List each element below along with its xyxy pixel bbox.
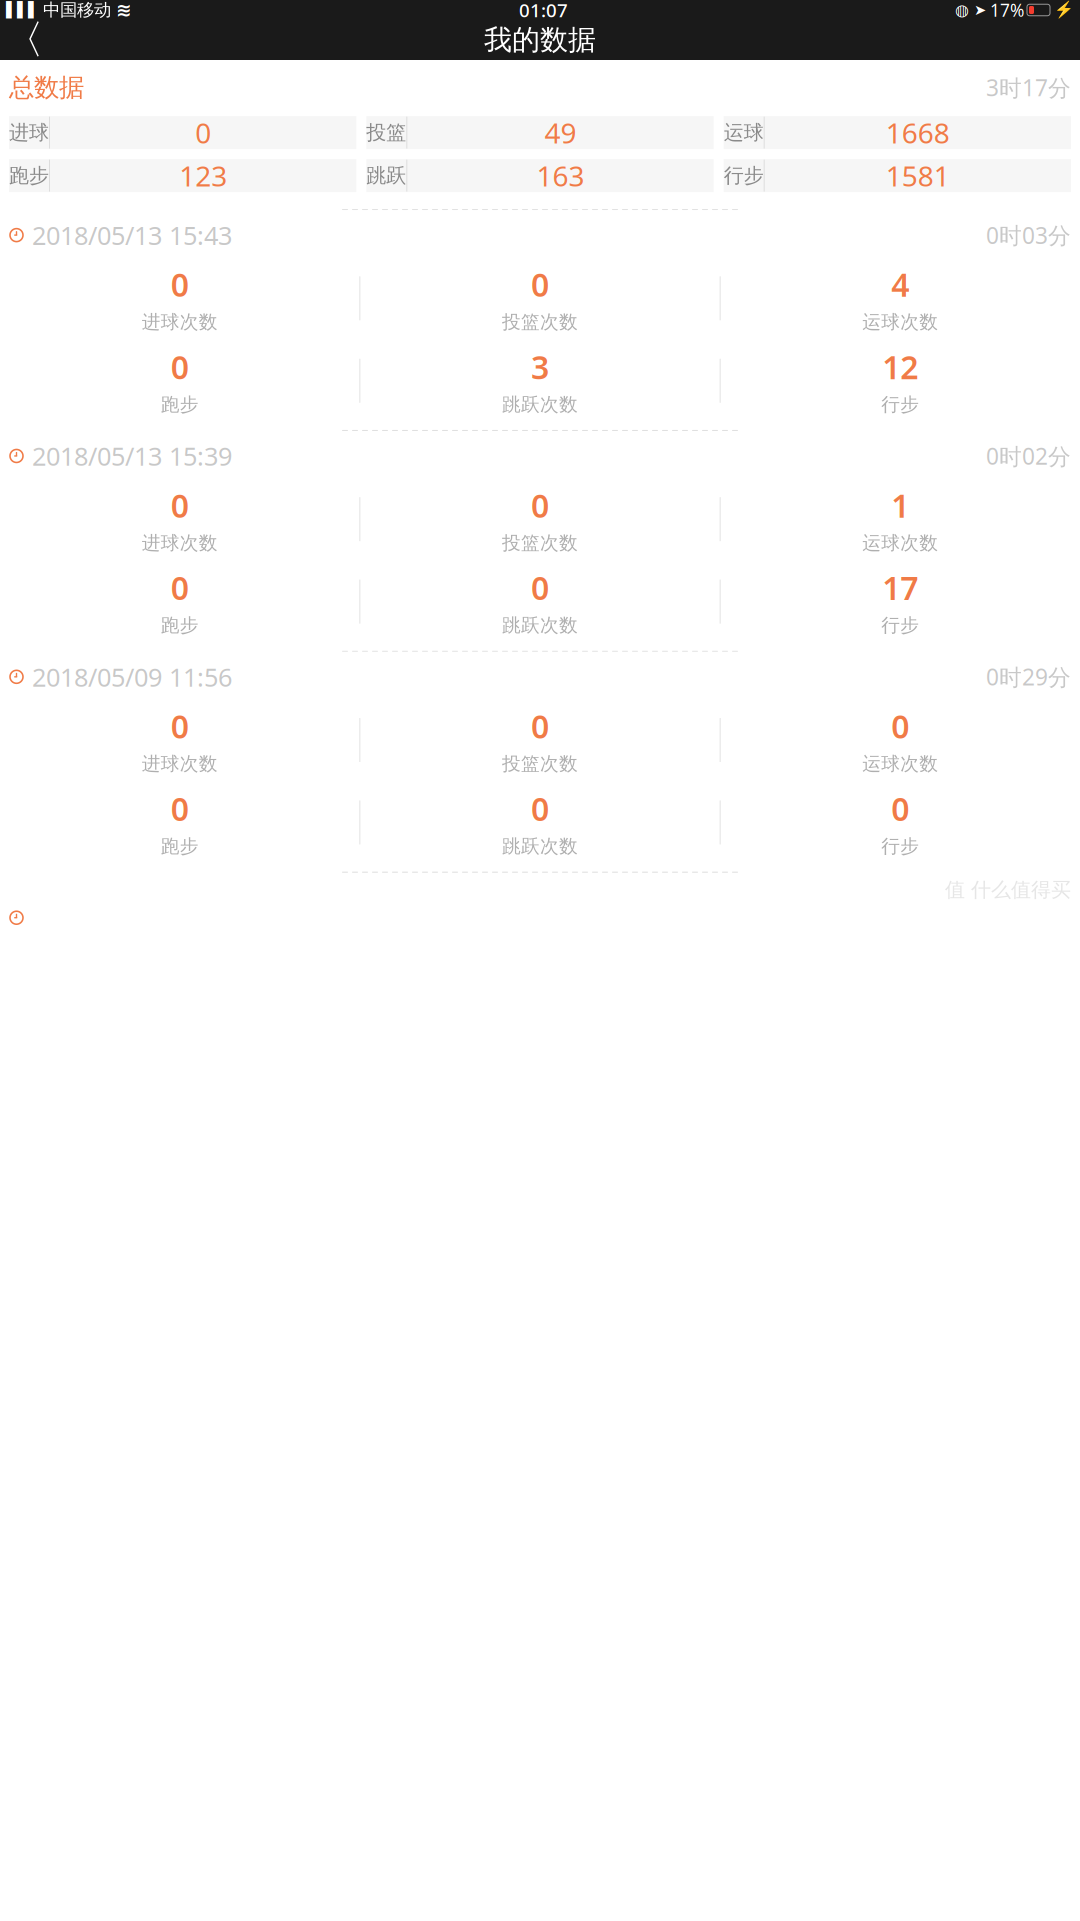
staticText: 进球 <box>9 120 49 145</box>
button[interactable]: Back <box>0 20 48 60</box>
button[interactable]: 2018/05/13 15:43 <box>0 210 1080 430</box>
staticText: 投篮次数 <box>502 311 578 333</box>
staticText: 运球次数 <box>862 311 938 333</box>
staticText: 行步 <box>881 614 919 637</box>
staticText: 12 <box>882 345 918 388</box>
staticText: 01:07 <box>519 0 568 22</box>
staticText: 跳跃次数 <box>502 393 578 416</box>
staticText: 0 <box>891 705 909 747</box>
staticText: 行步 <box>881 835 919 858</box>
staticText: 3 <box>531 345 549 388</box>
staticText: 0 <box>531 787 549 830</box>
staticText: 跑步 <box>9 163 49 188</box>
staticText: 17 <box>882 566 918 609</box>
staticText: ▌▌▌ <box>6 2 39 18</box>
staticText: 0 <box>171 345 189 388</box>
staticText: 2018/05/09 11:56 <box>32 660 232 694</box>
staticText: 0 <box>171 566 189 609</box>
staticText: 0 <box>531 566 549 609</box>
staticText: 0 <box>531 263 549 306</box>
staticText: 0 <box>891 787 909 830</box>
staticText: 我的数据 <box>484 23 596 57</box>
staticText: ≋ <box>116 0 132 21</box>
staticText: 49 <box>544 114 576 151</box>
staticText: 投篮次数 <box>502 752 578 775</box>
staticText: 163 <box>536 157 584 194</box>
staticText: 跳跃 <box>366 163 406 188</box>
staticText: ➤ <box>974 2 986 18</box>
staticText: 总数据 <box>9 72 84 103</box>
staticText: ◍ <box>955 1 969 19</box>
staticText: 进球次数 <box>142 311 218 333</box>
staticText: 进球次数 <box>142 752 218 775</box>
staticText: ⚡ <box>1054 1 1074 19</box>
staticText: 〈 <box>4 15 44 64</box>
staticText: 运球次数 <box>862 752 938 775</box>
staticText: 跑步 <box>161 835 199 858</box>
staticText: 2018/05/13 15:39 <box>32 439 232 473</box>
staticText: 中国移动 <box>43 0 111 21</box>
staticText: 值 什么值得买 <box>945 878 1071 902</box>
staticText: 4 <box>891 263 909 306</box>
staticText: 1 <box>891 484 909 526</box>
staticText: 0时29分 <box>986 662 1071 692</box>
staticText: 123 <box>179 157 227 194</box>
staticText: 2018/05/13 15:43 <box>32 218 232 252</box>
staticText: 行步 <box>881 393 919 416</box>
staticText: 1581 <box>886 157 950 194</box>
staticText: 跑步 <box>161 393 199 416</box>
staticText: 跑步 <box>161 614 199 637</box>
staticText: 0 <box>171 484 189 526</box>
staticText: 0 <box>531 484 549 526</box>
button[interactable]: 2018/05/09 11:56 <box>0 652 1080 872</box>
staticText: 0时03分 <box>986 220 1071 250</box>
staticText: 进球次数 <box>142 531 218 554</box>
staticText: 投篮 <box>366 120 406 145</box>
staticText: 17% <box>990 0 1024 21</box>
staticText: 行步 <box>724 163 764 188</box>
staticText: 运球 <box>724 120 764 145</box>
staticText: 跳跃次数 <box>502 614 578 637</box>
button[interactable]: 2018/05/13 15:39 <box>0 431 1080 651</box>
staticText: 运球次数 <box>862 531 938 554</box>
staticText: 投篮次数 <box>502 531 578 554</box>
staticText: 3时17分 <box>986 72 1071 103</box>
staticText: 0时02分 <box>986 441 1071 471</box>
staticText: 1668 <box>886 114 950 151</box>
staticText: 0 <box>195 114 211 151</box>
staticText: 0 <box>531 705 549 747</box>
staticText: 跳跃次数 <box>502 835 578 858</box>
staticText: 0 <box>171 787 189 830</box>
staticText: 0 <box>171 263 189 306</box>
staticText: 0 <box>171 705 189 747</box>
